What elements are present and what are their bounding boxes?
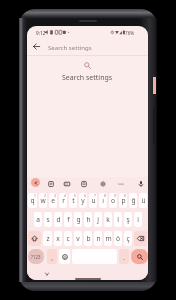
button[interactable]: y [79, 193, 87, 208]
button[interactable]: Stickers [78, 178, 89, 189]
staticText: z [46, 234, 50, 243]
staticText: f [67, 215, 70, 224]
staticText: o [111, 196, 115, 205]
button[interactable]: r [59, 193, 67, 208]
staticText: c [66, 234, 70, 243]
button[interactable]: z [43, 231, 52, 246]
staticText: 9 [114, 193, 116, 197]
button[interactable]: s [44, 212, 52, 227]
staticText: n [96, 234, 101, 243]
staticText: 5 [74, 193, 76, 197]
button[interactable]: Settings [97, 178, 108, 189]
staticText: 6 [84, 193, 86, 197]
staticText: 9:12 [36, 30, 46, 36]
button[interactable]: Back [29, 39, 44, 54]
button[interactable]: ö [114, 231, 122, 246]
button[interactable]: h [84, 212, 92, 227]
button[interactable]: m [104, 231, 112, 246]
staticText: , [51, 253, 53, 261]
button[interactable]: t [69, 193, 77, 208]
button[interactable]: n [94, 231, 102, 246]
staticText: d [56, 215, 61, 224]
staticText: 76% [125, 30, 135, 36]
staticText: i [137, 215, 139, 224]
staticText: s [46, 215, 50, 224]
staticText: m [105, 234, 112, 243]
staticText: r [62, 196, 65, 205]
button[interactable]: j [94, 212, 102, 227]
staticText: l [117, 215, 119, 224]
button[interactable]: More options [115, 178, 126, 189]
staticText: v [76, 234, 80, 243]
staticText: a [36, 215, 40, 224]
staticText: ş [126, 215, 130, 224]
staticText: t [72, 196, 75, 205]
staticText: q [30, 196, 35, 205]
button[interactable]: Emoji [59, 249, 70, 264]
staticText: 4 [64, 193, 66, 197]
staticText: ğ [131, 196, 136, 205]
staticText: ç [126, 234, 130, 243]
staticText: Search settings [48, 43, 92, 51]
button[interactable]: Clipboard [45, 178, 56, 189]
button[interactable]: x [54, 231, 62, 246]
staticText: g [76, 215, 81, 224]
staticText: 1 [34, 193, 36, 197]
button[interactable]: ğ [129, 193, 137, 208]
button[interactable]: Shift [28, 231, 41, 246]
staticText: 7 [94, 193, 96, 197]
staticText: b [86, 234, 91, 243]
staticText: ü [141, 196, 146, 205]
staticText: ö [116, 234, 120, 243]
button[interactable]: v [74, 231, 82, 246]
button[interactable]: Search [131, 249, 148, 264]
staticText: 0 [124, 193, 126, 197]
button[interactable]: c [64, 231, 72, 246]
button[interactable]: u [89, 193, 97, 208]
button[interactable]: l [114, 212, 122, 227]
staticText: u [91, 196, 96, 205]
button[interactable]: o [109, 193, 117, 208]
button[interactable]: Expand toolbar [31, 178, 40, 187]
staticText: j [97, 215, 99, 224]
button[interactable]: GIF [61, 178, 72, 189]
button[interactable]: q [28, 193, 37, 208]
button[interactable]: ş [124, 212, 132, 227]
button[interactable]: Backspace [134, 231, 147, 246]
button[interactable]: b [84, 231, 92, 246]
staticText: 3 [54, 193, 56, 197]
button[interactable]: e [49, 193, 57, 208]
button[interactable]: i [134, 212, 142, 227]
button[interactable]: k [104, 212, 112, 227]
staticText: Search settings [62, 73, 113, 83]
button[interactable]: ç [124, 231, 132, 246]
staticText: ı [102, 196, 104, 205]
staticText: e [51, 196, 55, 205]
staticText: x [56, 234, 60, 243]
button[interactable]: d [54, 212, 62, 227]
button[interactable]: p [119, 193, 127, 208]
button[interactable]: ü [139, 193, 147, 208]
button[interactable]: f [64, 212, 72, 227]
button[interactable]: Hide keyboard [45, 272, 49, 276]
staticText: p [121, 196, 126, 205]
button[interactable]: Voice input [135, 178, 146, 189]
button[interactable]: g [74, 212, 82, 227]
staticText: y [81, 196, 85, 205]
staticText: w [40, 196, 46, 205]
button[interactable]: a [34, 212, 42, 227]
button[interactable]: ı [99, 193, 107, 208]
staticText: 2 [44, 193, 46, 197]
button[interactable]: Symbols [28, 249, 44, 264]
staticText: k [106, 215, 110, 224]
button[interactable]: . [119, 249, 129, 264]
staticText: h [86, 215, 91, 224]
staticText: . [123, 253, 125, 261]
button[interactable]: , [47, 249, 57, 264]
staticText: 8 [104, 193, 106, 197]
staticText: ?123 [31, 254, 41, 260]
button[interactable]: w [39, 193, 47, 208]
